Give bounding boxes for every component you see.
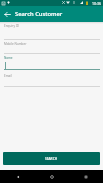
staticText: Email (4, 74, 12, 78)
button[interactable]: Back (0, 170, 35, 183)
staticText: 10:36 (92, 1, 101, 6)
staticText: Mobile Number (4, 42, 27, 46)
button[interactable]: Navigate up (0, 6, 15, 22)
staticText: Enquiry ID (4, 24, 19, 28)
staticText: Search Customer (15, 10, 63, 18)
staticText: SEARCH (45, 157, 58, 161)
button[interactable]: SEARCH (3, 152, 100, 165)
button[interactable]: Home (35, 170, 69, 183)
button[interactable]: Recent apps (69, 170, 103, 183)
staticText: Name (4, 56, 13, 60)
